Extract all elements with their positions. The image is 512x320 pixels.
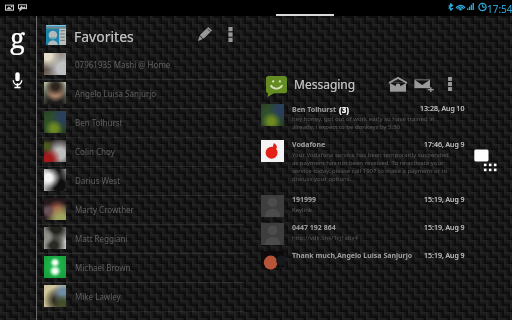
staticText: Darius West [75, 175, 121, 186]
button[interactable]: New message [414, 76, 434, 92]
staticText: http://vdk.link/1rj1a6x4 [292, 234, 449, 242]
button[interactable]: More options [446, 77, 454, 91]
button[interactable]: Edit [197, 26, 213, 42]
button[interactable]: Thank much,Angelo Luisa Sanjurjo [256, 251, 468, 267]
button[interactable]: Open messages [388, 76, 408, 92]
button[interactable]: Colin Choy [38, 140, 244, 169]
staticText: hey honey, got out of work early so have… [292, 115, 449, 131]
staticText: Thank much,Angelo Luisa Sanjurjo [292, 251, 413, 261]
staticText: 13:28, Aug 10 [420, 104, 465, 114]
button[interactable]: 0447 192 864 [256, 223, 468, 245]
staticText: Keylink [292, 206, 449, 214]
staticText: 0447 192 864 [292, 223, 336, 233]
button[interactable]: Darius West [38, 169, 244, 198]
button[interactable]: Marty Crowther [38, 198, 244, 227]
staticText: g [10, 18, 26, 56]
staticText: Ben Tolhurst [292, 105, 336, 115]
staticText: 15:19, Aug 9 [424, 195, 465, 205]
staticText: (3) [339, 104, 349, 115]
button[interactable]: Michael Brown [38, 256, 244, 285]
staticText: Marty Crowther [75, 204, 134, 215]
staticText: 15:19, Aug 9 [424, 251, 465, 261]
button[interactable]: 191999 [256, 195, 468, 217]
staticText: Your Vodafone service has been temporari… [292, 151, 449, 183]
button[interactable]: Ben Tolhurst [256, 104, 468, 134]
button[interactable]: 07961935 Mashi @ Home [38, 53, 244, 82]
staticText: Michael Brown [75, 262, 131, 273]
button[interactable]: Matt Reggiani [38, 227, 244, 256]
button[interactable]: Angelo Luisa Sanjurjo [38, 82, 244, 111]
staticText: Messaging [294, 76, 356, 92]
staticText: Favorites [74, 27, 134, 46]
button[interactable]: More options [226, 27, 235, 42]
staticText: Matt Reggiani [75, 233, 128, 244]
staticText: 07961935 Mashi @ Home [75, 59, 171, 70]
staticText: Ben Tolhurst [75, 117, 123, 128]
staticText: Colin Choy [75, 146, 115, 157]
button[interactable]: Ben Tolhurst [38, 111, 244, 140]
button[interactable]: Mike Lawley [38, 285, 244, 314]
staticText: Mike Lawley [75, 291, 121, 302]
staticText: Vodafone [292, 140, 326, 150]
staticText: 15:19, Aug 9 [424, 223, 465, 233]
button[interactable]: Vodafone [256, 140, 468, 186]
staticText: Angelo Luisa Sanjurjo [75, 88, 157, 99]
button[interactable]: Google search [0, 0, 37, 320]
button[interactable]: Apps [472, 147, 500, 173]
staticText: 191999 [292, 195, 317, 205]
staticText: 17:54 [487, 2, 512, 16]
staticText: 17:46, Aug 9 [424, 140, 465, 150]
